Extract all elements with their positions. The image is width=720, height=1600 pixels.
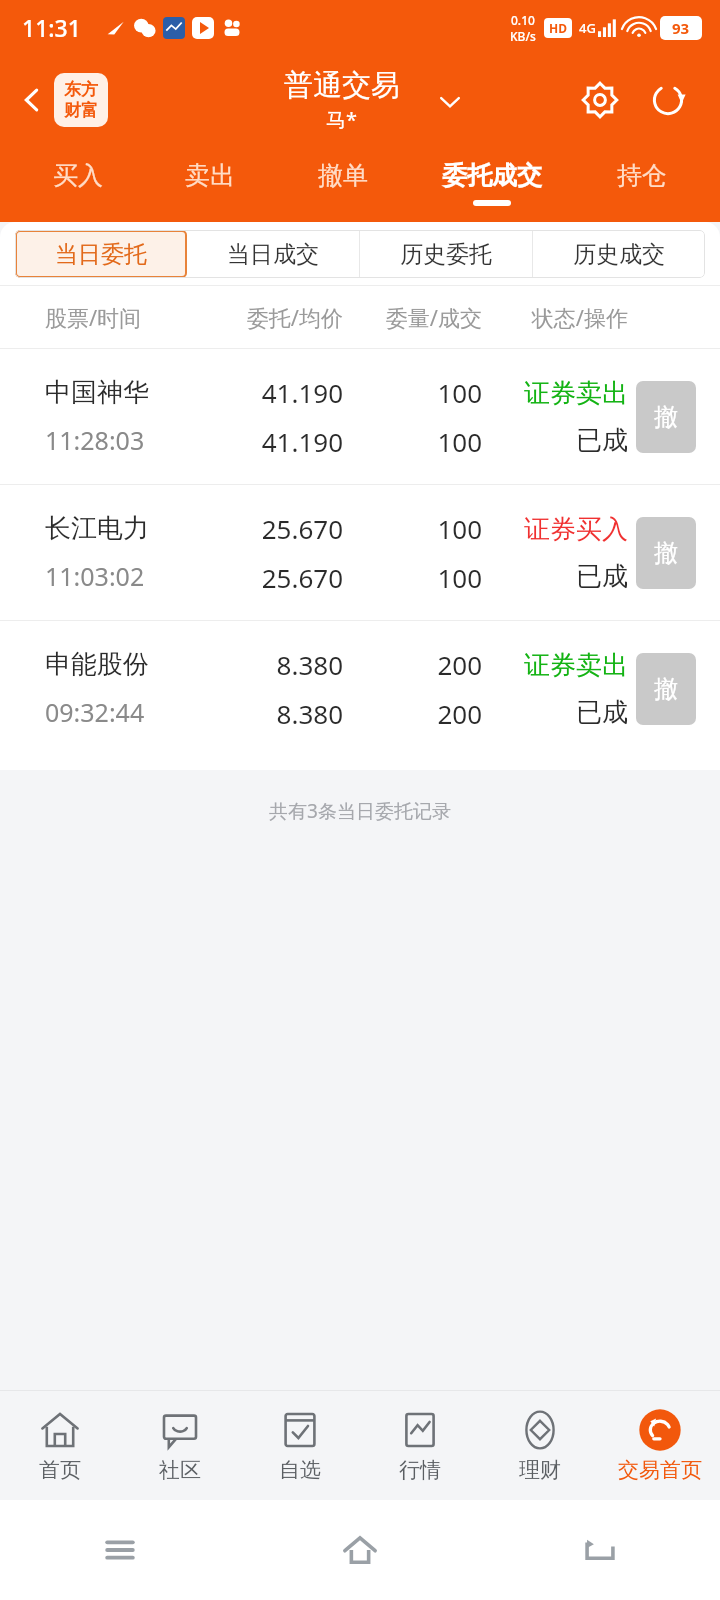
button[interactable]: 撤 <box>636 517 696 589</box>
staticText: 已成 <box>482 560 628 593</box>
staticText: 状态/操作 <box>482 302 628 332</box>
button[interactable]: Switch account <box>430 82 470 122</box>
button[interactable]: 卖出 <box>144 145 276 222</box>
staticText: 100 <box>343 560 482 595</box>
staticText: 行情 <box>399 1457 441 1483</box>
button[interactable]: Settings <box>574 74 626 126</box>
staticText: 8.380 <box>197 696 343 731</box>
staticText: 25.670 <box>197 560 343 595</box>
staticText: 卖出 <box>185 160 235 191</box>
button[interactable]: 历史成交 <box>533 230 705 278</box>
button[interactable]: 撤 <box>636 653 696 725</box>
button[interactable]: 买入 <box>12 145 144 222</box>
staticText: 中国神华 <box>45 376 149 409</box>
staticText: 93 <box>672 18 690 38</box>
button[interactable]: 委托成交 <box>409 145 575 222</box>
staticText: 撤 <box>654 538 678 568</box>
staticText: 25.670 <box>197 511 343 546</box>
staticText: 撤 <box>654 402 678 432</box>
staticText: 100 <box>343 511 482 546</box>
staticText: 证券买入 <box>482 513 628 546</box>
staticText: 长江电力 <box>45 512 149 545</box>
button[interactable]: 行情 <box>360 1390 480 1500</box>
button[interactable]: 社区 <box>120 1390 240 1500</box>
staticText: 当日委托 <box>55 240 147 269</box>
staticText: 持仓 <box>617 160 667 191</box>
staticText: 已成 <box>482 424 628 457</box>
staticText: 历史委托 <box>400 240 492 269</box>
staticText: 41.190 <box>197 424 343 459</box>
staticText: 41.190 <box>197 375 343 410</box>
button[interactable]: 持仓 <box>575 145 708 222</box>
button[interactable]: Refresh <box>642 74 694 126</box>
staticText: 200 <box>343 696 482 731</box>
staticText: 撤单 <box>318 160 368 191</box>
button[interactable]: Back <box>480 1500 720 1600</box>
staticText: 撤 <box>654 674 678 704</box>
staticText: 0.10 <box>511 12 535 28</box>
staticText: 100 <box>343 424 482 459</box>
staticText: 社区 <box>159 1457 201 1483</box>
button[interactable]: 撤 <box>636 381 696 453</box>
button[interactable]: 当日成交 <box>187 230 359 278</box>
staticText: 11:03:02 <box>45 559 145 593</box>
staticText: 证券卖出 <box>482 377 628 410</box>
staticText: 理财 <box>519 1457 561 1483</box>
staticText: 历史成交 <box>573 240 665 269</box>
staticText: 股票/时间 <box>45 302 197 332</box>
button[interactable]: Home <box>240 1500 480 1600</box>
staticText: 已成 <box>482 696 628 729</box>
staticText: 首页 <box>39 1457 81 1483</box>
staticText: 200 <box>343 647 482 682</box>
button[interactable]: 理财 <box>480 1390 600 1500</box>
button[interactable]: 撤单 <box>276 145 409 222</box>
staticText: 买入 <box>53 160 103 191</box>
button[interactable]: 交易首页 <box>600 1390 720 1500</box>
staticText: 共有3条当日委托记录 <box>0 798 720 824</box>
staticText: 东方 <box>64 79 98 100</box>
staticText: 申能股份 <box>45 648 149 681</box>
button[interactable]: 中国神华 <box>0 349 720 484</box>
staticText: 11:31 <box>22 12 81 43</box>
button[interactable]: 历史委托 <box>360 230 532 278</box>
button[interactable]: Back <box>8 76 56 124</box>
staticText: 自选 <box>279 1457 321 1483</box>
staticText: 09:32:44 <box>45 695 145 729</box>
staticText: 普通交易 <box>284 67 400 104</box>
staticText: 委量/成交 <box>343 302 482 332</box>
staticText: 交易首页 <box>618 1457 702 1483</box>
button[interactable]: Recents <box>0 1500 240 1600</box>
staticText: 4G <box>579 19 596 37</box>
button[interactable]: 首页 <box>0 1390 120 1500</box>
staticText: HD <box>549 20 567 36</box>
staticText: 委托成交 <box>442 160 542 191</box>
staticText: 财富 <box>64 100 98 121</box>
button[interactable]: 申能股份 <box>0 621 720 756</box>
button[interactable]: 东方财富 <box>54 73 108 127</box>
button[interactable]: 自选 <box>240 1390 360 1500</box>
button[interactable]: 长江电力 <box>0 485 720 620</box>
staticText: 11:28:03 <box>45 423 145 457</box>
staticText: 8.380 <box>197 647 343 682</box>
staticText: KB/s <box>510 28 536 44</box>
staticText: 100 <box>343 375 482 410</box>
staticText: 证券卖出 <box>482 649 628 682</box>
staticText: 当日成交 <box>227 240 319 269</box>
button[interactable]: 当日委托 <box>15 230 187 278</box>
staticText: 委托/均价 <box>197 302 343 332</box>
staticText: 马* <box>326 106 358 133</box>
